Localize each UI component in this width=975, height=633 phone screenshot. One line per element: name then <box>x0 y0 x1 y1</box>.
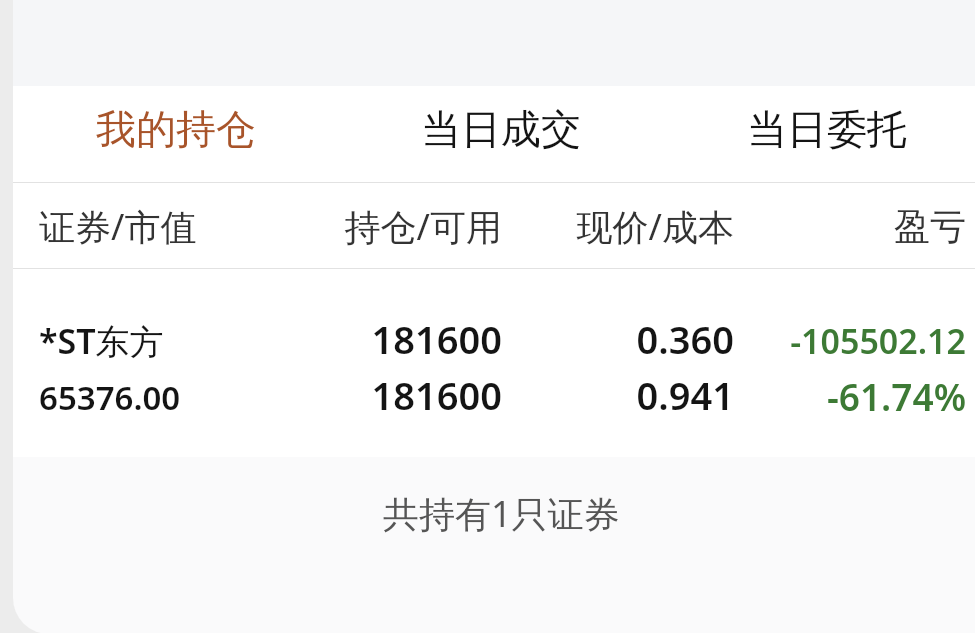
button[interactable]: 当日委托 <box>664 86 975 183</box>
staticText: 现价/成本 <box>502 202 734 251</box>
staticText: -105502.12 <box>734 318 966 364</box>
staticText: 当日成交 <box>421 104 581 154</box>
staticText: 当日委托 <box>747 104 907 154</box>
staticText: 我的持仓 <box>96 104 256 154</box>
staticText: 181600 <box>270 369 502 421</box>
button[interactable]: 我的持仓 <box>13 86 338 183</box>
staticText: -61.74% <box>734 371 966 421</box>
staticText: 盈亏 <box>734 204 966 249</box>
staticText: 0.360 <box>502 313 734 365</box>
staticText: 0.941 <box>502 369 734 421</box>
staticText: *ST东方 <box>39 318 270 364</box>
staticText: 65376.00 <box>39 375 270 420</box>
staticText: 共持有1只证券 <box>383 489 620 538</box>
staticText: 持仓/可用 <box>270 202 502 251</box>
staticText: 181600 <box>270 313 502 365</box>
button[interactable]: *ST东方 <box>13 269 975 457</box>
button[interactable]: 当日成交 <box>338 86 664 183</box>
staticText: 证券/市值 <box>39 202 270 251</box>
